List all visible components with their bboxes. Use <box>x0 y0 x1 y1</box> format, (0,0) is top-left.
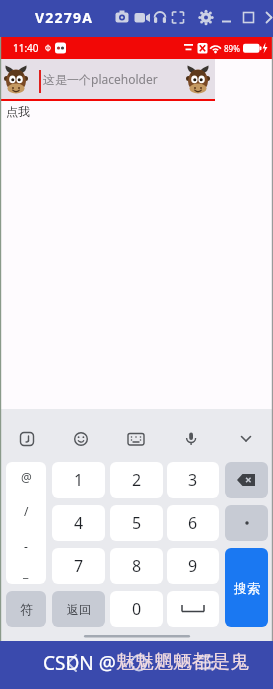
button[interactable]: 9 <box>167 548 219 584</box>
button[interactable]: 点我 <box>6 104 30 119</box>
button[interactable]: 8 <box>110 548 163 584</box>
staticText: 符 <box>20 601 33 617</box>
staticText: 1 <box>74 469 84 491</box>
staticText: / <box>24 503 29 519</box>
button[interactable] <box>54 645 90 681</box>
staticText: CSDN @ <box>43 650 116 676</box>
button[interactable] <box>116 423 156 455</box>
staticText: 5 <box>132 512 142 534</box>
button[interactable]: 0 <box>110 591 163 627</box>
button[interactable] <box>61 423 101 455</box>
staticText: 2 <box>132 469 142 491</box>
staticText: 7 <box>74 555 84 577</box>
button[interactable]: 5 <box>110 505 163 541</box>
button[interactable]: 搜索 <box>225 548 268 627</box>
button[interactable] <box>226 423 266 455</box>
staticText: 魅魅魍魉都是鬼 <box>116 650 249 674</box>
staticText: _ <box>23 564 29 580</box>
staticText: 返回 <box>67 602 91 617</box>
button[interactable] <box>151 8 169 27</box>
staticText: 0 <box>132 598 142 620</box>
button[interactable] <box>258 8 273 27</box>
button[interactable]: 符 <box>6 591 46 627</box>
staticText: V2279A <box>35 8 94 27</box>
button[interactable] <box>171 423 211 455</box>
button[interactable]: 7 <box>52 548 105 584</box>
button[interactable]: 这是一个placeholder <box>0 59 215 101</box>
button[interactable]: 2 <box>110 462 163 498</box>
button[interactable] <box>225 505 268 541</box>
button[interactable] <box>188 645 224 681</box>
staticText: 89% <box>224 43 240 54</box>
staticText: 3 <box>188 469 198 491</box>
button[interactable]: 4 <box>52 505 105 541</box>
button[interactable] <box>7 423 47 455</box>
staticText: 搜索 <box>234 580 260 596</box>
staticText: 4 <box>74 512 84 534</box>
button[interactable]: 返回 <box>52 591 105 627</box>
button[interactable] <box>240 8 258 27</box>
button[interactable]: @ <box>6 462 46 584</box>
button[interactable] <box>121 645 157 681</box>
staticText: 9 <box>188 555 198 577</box>
button[interactable]: 3 <box>167 462 219 498</box>
button[interactable] <box>197 8 215 27</box>
button[interactable]: 6 <box>167 505 219 541</box>
button[interactable]: 1 <box>52 462 105 498</box>
button[interactable] <box>218 8 236 27</box>
staticText: - <box>24 538 28 554</box>
staticText: 6 <box>188 512 198 534</box>
button[interactable] <box>225 462 268 498</box>
staticText: 这是一个placeholder <box>43 71 158 87</box>
staticText: 8 <box>132 555 142 577</box>
button[interactable] <box>113 8 131 27</box>
staticText: 11:40 <box>13 41 39 55</box>
staticText: 点我 <box>6 104 30 119</box>
button[interactable] <box>132 8 150 27</box>
staticText: @ <box>21 469 32 485</box>
button[interactable] <box>169 8 187 27</box>
button[interactable] <box>167 591 219 627</box>
